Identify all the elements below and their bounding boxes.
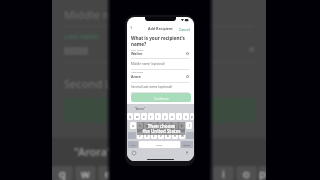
button[interactable]: 123 bbox=[128, 141, 138, 148]
button[interactable]: Clear bbox=[186, 75, 189, 78]
staticText: w bbox=[136, 115, 139, 119]
staticText: s bbox=[139, 124, 141, 128]
button[interactable]: Arora bbox=[131, 74, 189, 78]
staticText: v bbox=[160, 134, 162, 138]
button[interactable]: Walter bbox=[131, 51, 189, 55]
staticText: m bbox=[181, 134, 184, 138]
staticText: q bbox=[129, 115, 131, 119]
staticText: e bbox=[143, 115, 145, 119]
staticText: i bbox=[179, 115, 180, 119]
button[interactable]: x bbox=[144, 132, 150, 139]
staticText: b bbox=[167, 134, 169, 138]
button[interactable]: q bbox=[127, 113, 133, 120]
button[interactable]: Clear bbox=[186, 52, 189, 55]
staticText: Cancel bbox=[179, 27, 190, 32]
staticText: k bbox=[181, 124, 183, 128]
button[interactable]: Dictate bbox=[185, 151, 189, 155]
staticText: return bbox=[183, 143, 191, 146]
button[interactable]: return bbox=[181, 141, 193, 148]
staticText: Add Recipient bbox=[148, 26, 173, 31]
staticText: "Arora" bbox=[74, 144, 112, 159]
button[interactable]: v bbox=[158, 132, 164, 139]
button[interactable]: z bbox=[137, 132, 143, 139]
staticText: space bbox=[156, 143, 163, 146]
button[interactable]: s bbox=[137, 122, 143, 129]
staticText: y bbox=[164, 115, 166, 119]
button[interactable]: p bbox=[190, 113, 194, 120]
staticText: x bbox=[146, 134, 148, 138]
button[interactable]: g bbox=[158, 122, 164, 129]
button[interactable]: r bbox=[148, 113, 154, 120]
button[interactable]: k bbox=[179, 122, 185, 129]
button[interactable]: e bbox=[141, 113, 147, 120]
button[interactable]: Cancel bbox=[179, 27, 190, 32]
staticText: t bbox=[157, 115, 159, 119]
staticText: Walter bbox=[131, 51, 143, 55]
button[interactable]: b bbox=[165, 132, 171, 139]
button[interactable]: a bbox=[130, 122, 136, 129]
staticText: Last name bbox=[64, 32, 99, 42]
button[interactable]: m bbox=[179, 132, 185, 139]
staticText: Then choose the United States bbox=[142, 123, 181, 134]
staticText: h bbox=[167, 124, 169, 128]
staticText: r bbox=[150, 115, 152, 119]
button[interactable]: y bbox=[162, 113, 168, 120]
button[interactable]: d bbox=[144, 122, 150, 129]
button[interactable]: space bbox=[139, 141, 180, 148]
staticText: u bbox=[171, 115, 173, 119]
staticText: What is your recipient's name? bbox=[131, 35, 185, 47]
staticText: j bbox=[175, 124, 176, 128]
button[interactable]: Second Last name (optional) bbox=[131, 84, 189, 92]
staticText: n bbox=[174, 134, 176, 138]
button[interactable]: l bbox=[186, 122, 192, 129]
staticText: a bbox=[132, 124, 134, 128]
button[interactable]: j bbox=[172, 122, 178, 129]
staticText: p bbox=[259, 166, 266, 180]
button[interactable]: u bbox=[169, 113, 175, 120]
button[interactable]: h bbox=[165, 122, 171, 129]
button[interactable]: t bbox=[155, 113, 161, 120]
staticText: p bbox=[191, 115, 193, 119]
staticText: l bbox=[189, 124, 190, 128]
button[interactable]: o bbox=[183, 113, 189, 120]
staticText: c bbox=[153, 134, 155, 138]
staticText: Second Last name (optional) bbox=[131, 85, 173, 89]
button[interactable]: Back bbox=[129, 25, 134, 30]
button[interactable]: f bbox=[151, 122, 157, 129]
staticText: g bbox=[160, 124, 162, 128]
staticText: f bbox=[153, 124, 155, 128]
staticText: i bbox=[222, 166, 225, 180]
staticText: z bbox=[139, 134, 141, 138]
staticText: w bbox=[81, 166, 90, 180]
button[interactable]: c bbox=[151, 132, 157, 139]
staticText: g bbox=[59, 166, 66, 180]
staticText: o bbox=[243, 166, 250, 180]
staticText: Middle name bbox=[64, 7, 133, 22]
staticText: e bbox=[105, 166, 112, 180]
staticText: 123 bbox=[131, 143, 136, 146]
button[interactable]: i bbox=[176, 113, 182, 120]
staticText: Second Last bbox=[64, 76, 127, 91]
button[interactable]: Middle name (optional) bbox=[131, 61, 189, 69]
button[interactable]: w bbox=[134, 113, 140, 120]
button[interactable]: Emoji bbox=[132, 151, 136, 155]
staticText: Continue bbox=[154, 96, 169, 100]
staticText: "Arora" bbox=[135, 107, 145, 111]
staticText: d bbox=[146, 124, 148, 128]
staticText: Middle name (optional) bbox=[131, 62, 165, 66]
staticText: Arora bbox=[131, 74, 141, 78]
button[interactable]: n bbox=[172, 132, 178, 139]
staticText: First name bbox=[131, 48, 144, 51]
staticText: o bbox=[185, 115, 187, 119]
staticText: Last name bbox=[131, 70, 144, 73]
button[interactable]: Continue bbox=[131, 93, 191, 102]
